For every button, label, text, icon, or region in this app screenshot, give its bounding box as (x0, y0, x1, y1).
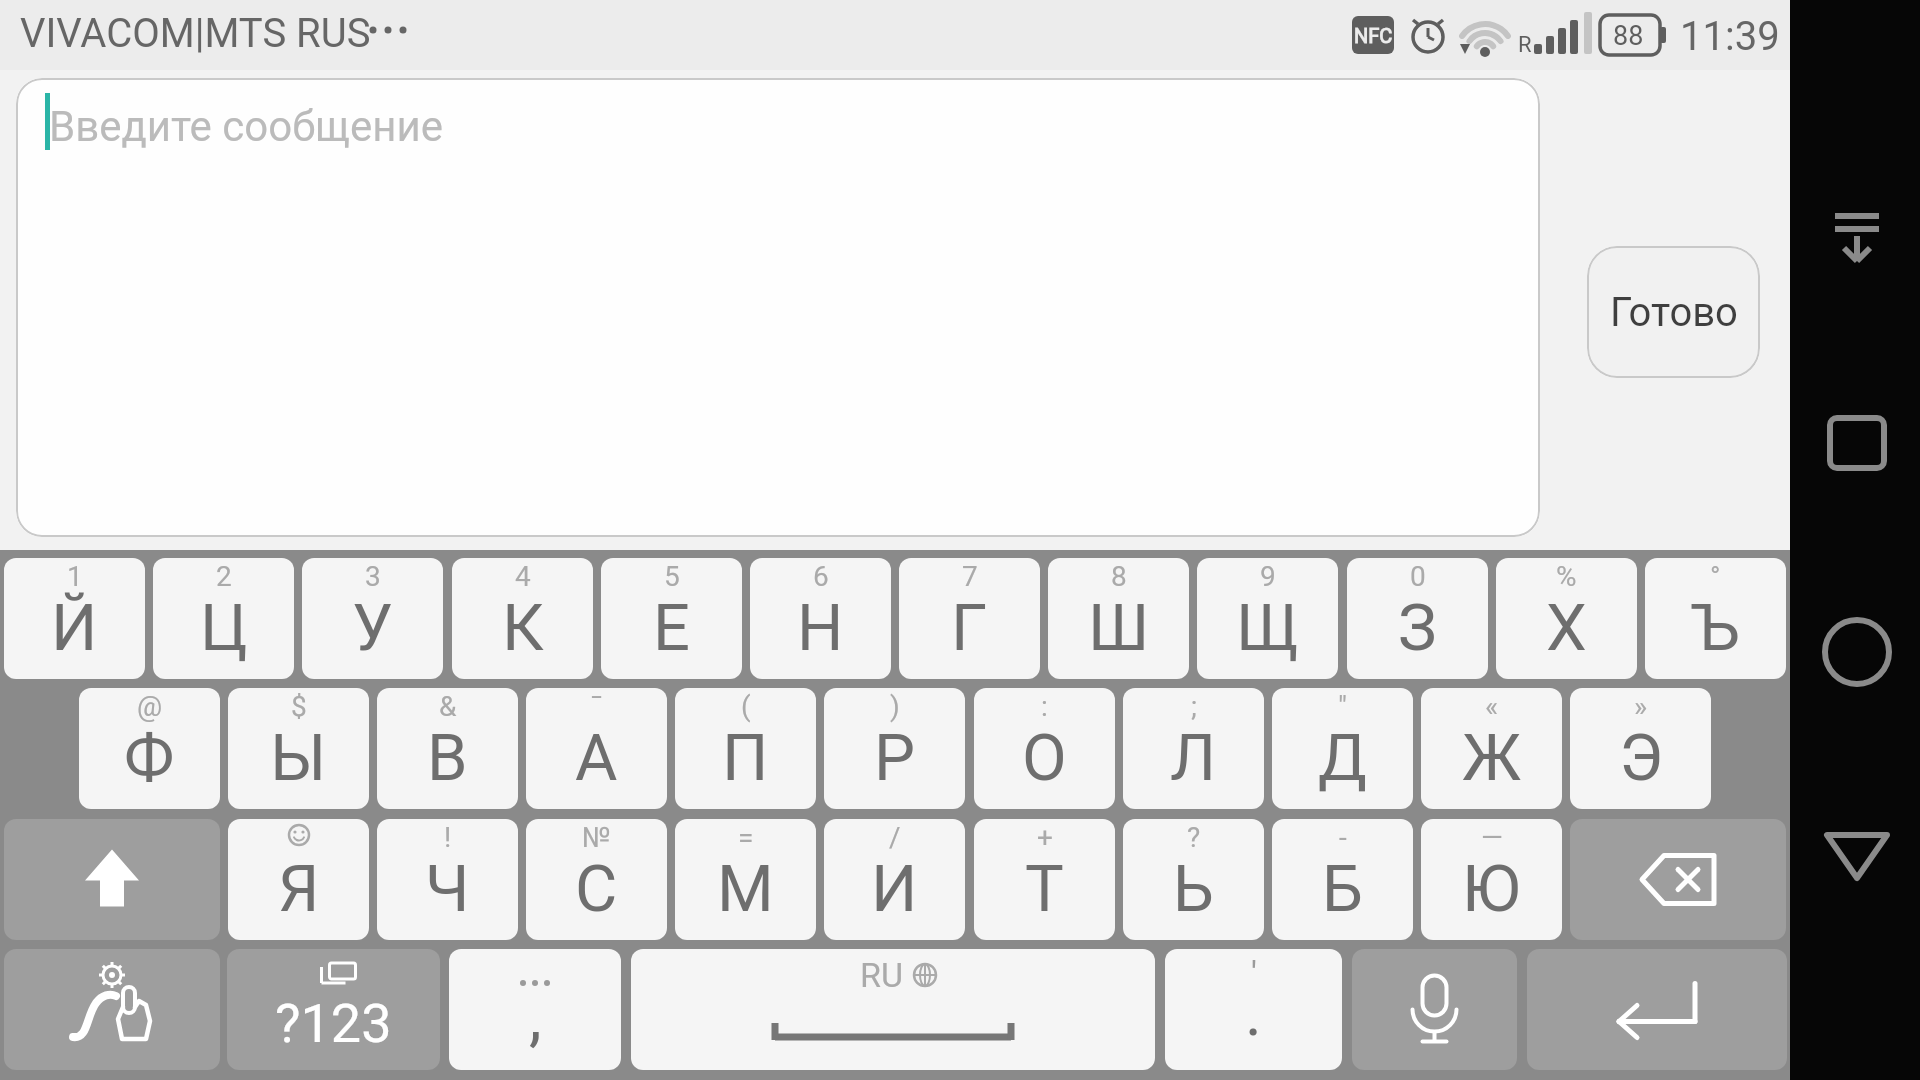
button[interactable]: 4 (452, 558, 593, 679)
button[interactable]: : (974, 688, 1115, 809)
button[interactable]: / (824, 819, 965, 940)
button[interactable]: 6 (750, 558, 891, 679)
staticText: 3 (365, 560, 381, 593)
button[interactable]: $ (228, 688, 369, 809)
staticText: R (1518, 32, 1532, 58)
button[interactable] (1812, 398, 1902, 488)
button[interactable]: ( (675, 688, 816, 809)
button[interactable]: 2 (153, 558, 294, 679)
staticText: ( (741, 690, 751, 723)
staticText: @ (137, 690, 163, 723)
staticText: 0 (1410, 560, 1426, 593)
button[interactable]: 3 (302, 558, 443, 679)
staticText: Ч (425, 851, 470, 927)
staticText: + (1037, 821, 1053, 854)
staticText: У (352, 590, 393, 666)
button[interactable] (4, 949, 220, 1070)
button[interactable]: 8 (1048, 558, 1189, 679)
staticText: Б (1322, 851, 1363, 927)
button[interactable]: RU (631, 949, 1155, 1070)
button[interactable]: , (449, 949, 621, 1070)
staticText: Х (1546, 590, 1587, 666)
button[interactable]: 7 (899, 558, 1040, 679)
button[interactable]: 0 (1347, 558, 1488, 679)
staticText: 2 (216, 560, 232, 593)
staticText: Э (1619, 720, 1663, 796)
button[interactable]: ¯ (526, 688, 667, 809)
staticText: » (1634, 690, 1648, 723)
staticText: ) (890, 690, 900, 723)
button[interactable]: Готово (1587, 246, 1760, 378)
staticText: — (1481, 821, 1503, 854)
staticText: Ы (270, 720, 327, 796)
staticText: NFC (1354, 24, 1393, 47)
button[interactable]: 5 (601, 558, 742, 679)
staticText: 8 (1111, 560, 1127, 593)
staticText: Ф (124, 720, 175, 796)
staticText: № (582, 821, 611, 854)
staticText: « (1485, 690, 1499, 723)
staticText: 6 (813, 560, 829, 593)
staticText: Ю (1462, 851, 1521, 927)
button[interactable]: - (1272, 819, 1413, 940)
button[interactable] (4, 819, 220, 940)
staticText: & (439, 690, 457, 723)
button[interactable]: ?123 (227, 949, 440, 1070)
staticText: ¯ (590, 690, 603, 723)
staticText: % (1556, 560, 1577, 593)
staticText: Л (1170, 720, 1217, 796)
button[interactable]: % (1496, 558, 1637, 679)
staticText: VIVACOM|MTS RUS (20, 10, 371, 57)
staticText: Е (653, 590, 690, 666)
staticText: ! (444, 821, 452, 854)
staticText: Ъ (1691, 590, 1741, 666)
staticText: 5 (664, 560, 680, 593)
button[interactable]: ) (824, 688, 965, 809)
button[interactable] (1570, 819, 1786, 940)
button[interactable]: @ (79, 688, 220, 809)
button[interactable]: Введите сообщение (16, 78, 1540, 537)
staticText: Й (51, 590, 98, 666)
staticText: ° (1710, 560, 1721, 593)
staticText: Ж (1462, 720, 1522, 796)
button[interactable]: ? (1123, 819, 1264, 940)
staticText: А (575, 720, 618, 796)
staticText: К (502, 590, 544, 666)
button[interactable]: & (377, 688, 518, 809)
button[interactable]: 9 (1197, 558, 1338, 679)
button[interactable]: — (1421, 819, 1562, 940)
staticText: В (427, 720, 468, 796)
staticText: ?123 (275, 992, 392, 1055)
staticText: С (575, 851, 618, 927)
button[interactable]: ' (1165, 949, 1342, 1070)
button[interactable]: ! (377, 819, 518, 940)
button[interactable] (1527, 949, 1787, 1070)
button[interactable]: " (1272, 688, 1413, 809)
staticText: 11:39 (1680, 13, 1780, 60)
staticText: . (1245, 976, 1262, 1051)
staticText: М (717, 851, 774, 927)
staticText: $ (291, 690, 307, 723)
button[interactable]: № (526, 819, 667, 940)
staticText: : (1041, 690, 1048, 723)
staticText: З (1398, 590, 1437, 666)
button[interactable]: ; (1123, 688, 1264, 809)
button[interactable]: = (675, 819, 816, 940)
staticText: И (871, 851, 918, 927)
button[interactable]: Я (228, 819, 369, 940)
staticText: Р (874, 720, 916, 796)
button[interactable]: « (1421, 688, 1562, 809)
button[interactable]: » (1570, 688, 1711, 809)
button[interactable] (1352, 949, 1517, 1070)
staticText: Ц (200, 590, 248, 666)
staticText: / (889, 821, 901, 854)
staticText: Готово (1610, 289, 1738, 336)
button[interactable] (1812, 196, 1902, 286)
button[interactable] (1812, 607, 1902, 697)
button[interactable] (1812, 810, 1902, 900)
staticText: Н (797, 590, 844, 666)
button[interactable]: ° (1645, 558, 1786, 679)
button[interactable]: + (974, 819, 1115, 940)
staticText: Ь (1173, 851, 1214, 927)
button[interactable]: 1 (4, 558, 145, 679)
